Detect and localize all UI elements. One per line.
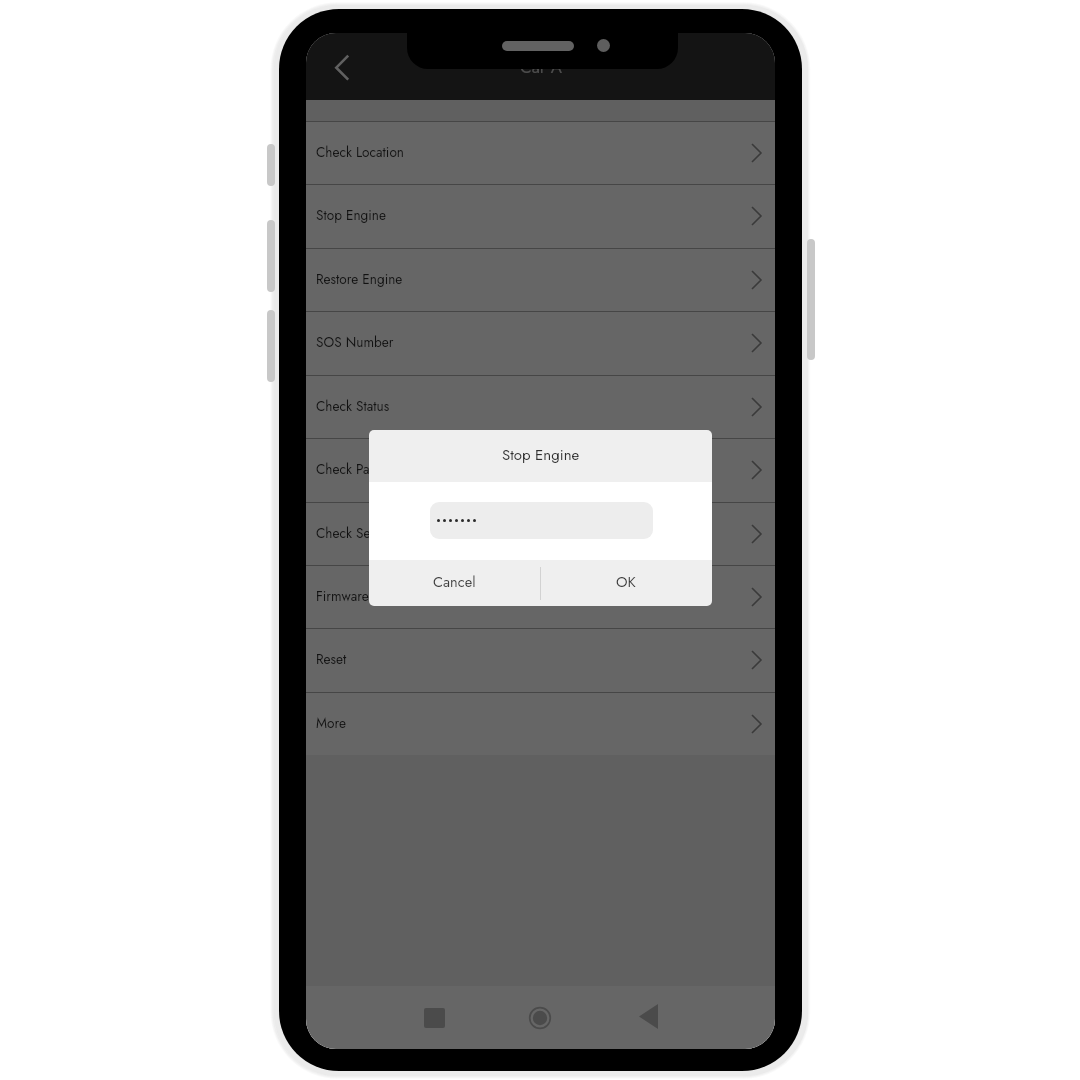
staticText: Stop Engine [316,205,386,225]
staticText: Restore Engine [316,269,403,289]
button[interactable] [430,502,653,539]
staticText: Cancel [433,571,476,592]
staticText: Reset [316,649,347,669]
staticText: SOS Number [316,332,394,352]
staticText: Check Password [316,459,410,479]
button[interactable]: More [306,692,775,755]
staticText: Check Location [316,142,404,162]
button[interactable]: Check Status [306,375,775,438]
staticText: Stop Engine [502,444,580,466]
button[interactable]: Back [627,995,669,1037]
button[interactable]: Recents [413,997,455,1039]
staticText: Car A [520,55,562,80]
button[interactable]: OK [540,560,712,606]
staticText: Check Status [316,396,390,416]
button[interactable]: Restore Engine [306,248,775,311]
button[interactable]: Check Server [306,502,775,565]
button[interactable]: Check Location [306,121,775,184]
button[interactable]: Home [519,997,561,1039]
staticText: Check Server [316,523,393,543]
button[interactable]: Reset [306,628,775,691]
button[interactable]: Stop Engine [306,184,775,247]
button[interactable]: Cancel [369,560,540,606]
button[interactable]: Back [330,49,356,85]
button[interactable]: Firmware Version [306,565,775,628]
staticText: More [316,713,346,733]
staticText: Firmware Version [316,586,416,606]
button[interactable]: Check Password [306,438,775,501]
button[interactable]: SOS Number [306,311,775,374]
staticText: OK [616,571,636,592]
